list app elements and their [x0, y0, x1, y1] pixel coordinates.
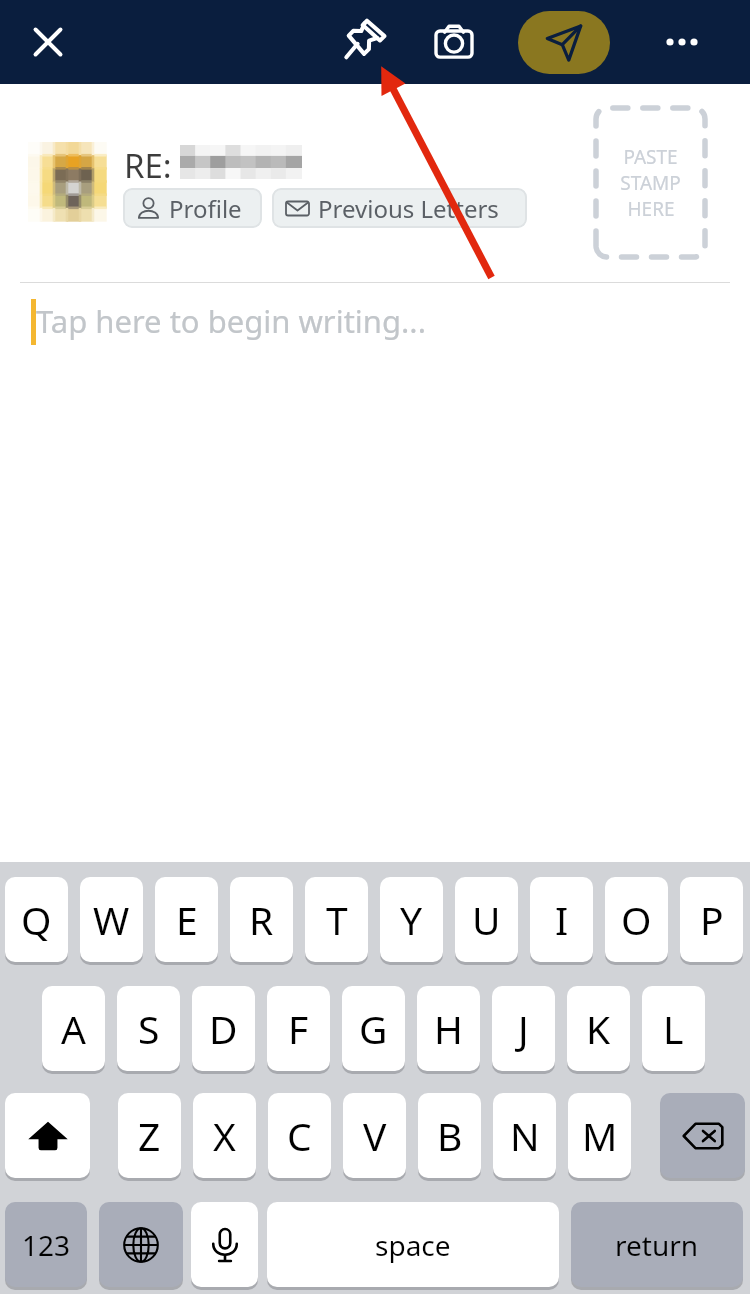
staticText: U [472, 893, 501, 946]
staticText: V [363, 1109, 387, 1162]
button[interactable]: V [343, 1093, 406, 1181]
staticText: B [437, 1109, 463, 1162]
staticText: N [510, 1109, 540, 1162]
button[interactable]: U [455, 877, 518, 965]
staticText: Previous Letters [318, 192, 499, 225]
staticText: Z [138, 1109, 161, 1162]
staticText: O [621, 893, 652, 946]
button[interactable]: Switch language [99, 1202, 183, 1290]
button[interactable]: return [571, 1202, 743, 1290]
staticText: Tap here to begin writing... [36, 300, 426, 342]
staticText: G [359, 1002, 388, 1055]
staticText: T [326, 893, 348, 946]
button[interactable]: More options [652, 12, 712, 72]
button[interactable]: Delete [660, 1093, 745, 1181]
button[interactable]: C [268, 1093, 331, 1181]
staticText: 123 [22, 1226, 71, 1264]
button[interactable]: T [305, 877, 368, 965]
staticText: RE: [124, 143, 172, 188]
button[interactable]: J [492, 986, 555, 1074]
staticText: K [586, 1002, 611, 1055]
button[interactable]: 123 [5, 1202, 87, 1290]
staticText: HERE [627, 196, 675, 222]
button[interactable]: Q [5, 877, 68, 965]
button[interactable]: Profile [123, 188, 262, 228]
staticText: Q [21, 893, 52, 946]
button[interactable]: E [155, 877, 218, 965]
button[interactable]: H [417, 986, 480, 1074]
staticText: R [249, 893, 274, 946]
button[interactable]: space [267, 1202, 559, 1290]
button[interactable]: N [493, 1093, 556, 1181]
button[interactable]: A [42, 986, 105, 1074]
button[interactable]: Z [118, 1093, 181, 1181]
staticText: S [138, 1002, 160, 1055]
staticText: W [93, 893, 130, 946]
button[interactable]: L [642, 986, 705, 1074]
staticText: return [615, 1226, 699, 1264]
button[interactable]: W [80, 877, 143, 965]
staticText: A [61, 1002, 86, 1055]
button[interactable]: Previous Letters [272, 188, 527, 228]
button[interactable]: F [267, 986, 330, 1074]
button[interactable]: D [192, 986, 255, 1074]
staticText: F [288, 1002, 309, 1055]
button[interactable]: Y [380, 877, 443, 965]
staticText: STAMP [620, 170, 681, 196]
button[interactable]: M [568, 1093, 631, 1181]
staticText: space [375, 1226, 451, 1264]
button[interactable]: R [230, 877, 293, 965]
staticText: I [555, 893, 569, 946]
button[interactable]: Close [20, 14, 76, 70]
button[interactable]: Voice input [191, 1202, 258, 1290]
staticText: E [176, 893, 198, 946]
staticText: H [434, 1002, 463, 1055]
button[interactable]: Send [518, 11, 610, 74]
staticText: D [209, 1002, 238, 1055]
button[interactable]: G [342, 986, 405, 1074]
staticText: L [663, 1002, 684, 1055]
staticText: C [287, 1109, 312, 1162]
staticText: Profile [169, 192, 242, 225]
button[interactable]: K [567, 986, 630, 1074]
button[interactable]: B [418, 1093, 481, 1181]
button[interactable]: O [605, 877, 668, 965]
staticText: M [582, 1109, 618, 1162]
button[interactable]: S [117, 986, 180, 1074]
button[interactable]: Camera [424, 12, 484, 72]
button[interactable]: I [530, 877, 593, 965]
button[interactable]: Shift [5, 1093, 90, 1181]
staticText: P [700, 893, 724, 946]
button[interactable]: Pin [336, 9, 396, 69]
button[interactable]: X [193, 1093, 256, 1181]
staticText: PASTE [623, 144, 678, 170]
staticText: Y [400, 893, 423, 946]
button[interactable]: P [680, 877, 743, 965]
staticText: X [213, 1109, 236, 1162]
staticText: J [518, 1002, 529, 1055]
